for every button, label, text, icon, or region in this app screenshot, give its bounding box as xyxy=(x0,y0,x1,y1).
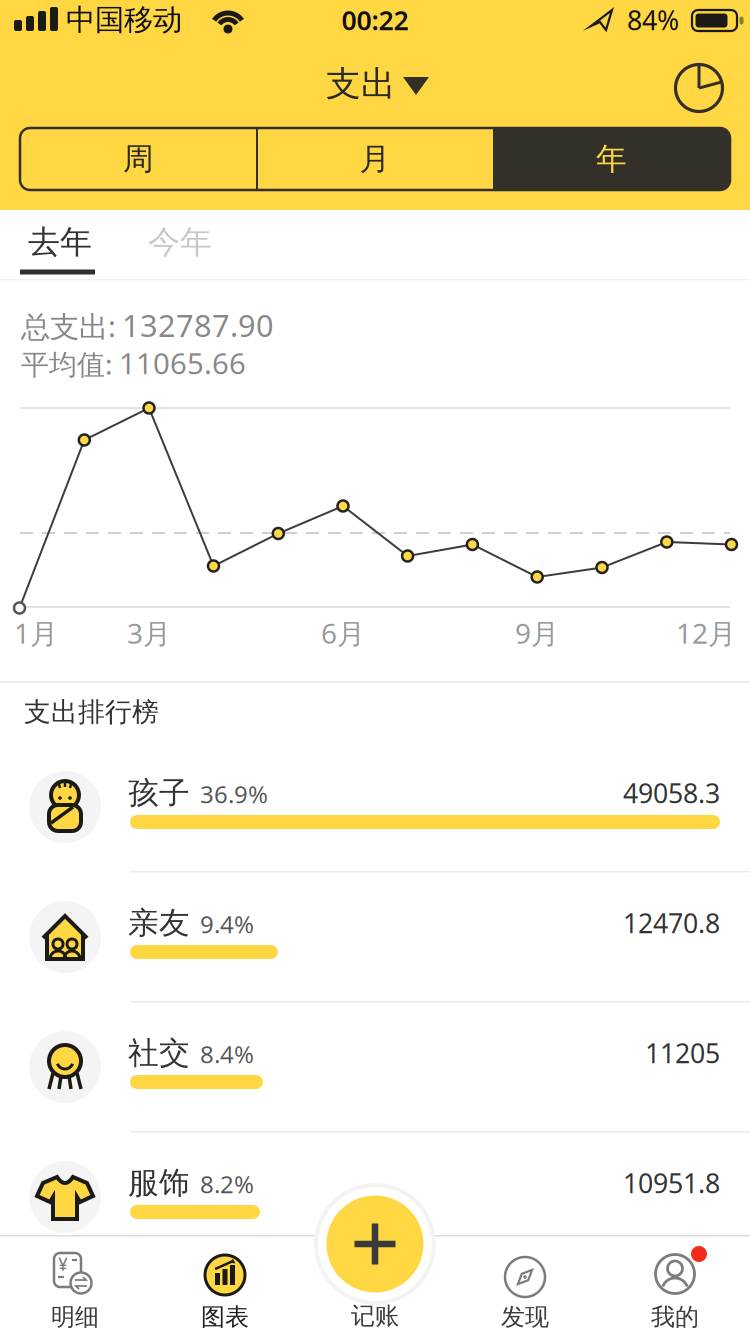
staticText: 去年 xyxy=(28,222,92,262)
button[interactable]: 去年 xyxy=(10,207,110,277)
staticText: 服饰 xyxy=(128,1164,190,1202)
staticText: 11205 xyxy=(645,1035,720,1071)
staticText: 12月 xyxy=(676,614,736,652)
staticText: ¥ xyxy=(58,1252,68,1275)
staticText: 36.9% xyxy=(200,778,268,810)
button[interactable]: 年 xyxy=(493,128,730,190)
staticText: 10951.8 xyxy=(623,1165,720,1201)
button[interactable]: 发现 xyxy=(480,1237,570,1333)
staticText: 3月 xyxy=(127,614,171,652)
staticText: 12470.8 xyxy=(623,905,720,941)
button[interactable]: 支出 xyxy=(300,46,470,126)
staticText: 9月 xyxy=(515,614,559,652)
staticText: 我的 xyxy=(651,1302,699,1332)
button[interactable]: 月 xyxy=(257,128,493,190)
button[interactable]: 我的 xyxy=(630,1237,720,1333)
staticText: 支出 xyxy=(326,63,396,105)
button[interactable]: 亲友 xyxy=(0,872,750,1002)
staticText: 支出排行榜 xyxy=(24,696,159,728)
staticText: 孩子 xyxy=(128,774,190,812)
staticText: 1月 xyxy=(14,614,58,652)
staticText: 平均值: xyxy=(21,345,113,382)
button[interactable]: 社交 xyxy=(0,1002,750,1132)
staticText: 社交 xyxy=(128,1034,190,1072)
button[interactable]: 今年 xyxy=(130,207,230,277)
staticText: 亲友 xyxy=(128,904,190,942)
staticText: 图表 xyxy=(201,1302,249,1332)
staticText: 周 xyxy=(123,140,154,178)
staticText: 明细 xyxy=(51,1302,99,1332)
button[interactable]: 图表 xyxy=(180,1237,270,1333)
button[interactable]: 周 xyxy=(20,128,257,190)
staticText: 8.2% xyxy=(200,1168,254,1200)
staticText: 132787.90 xyxy=(122,305,274,345)
button[interactable]: 服饰 xyxy=(0,1132,750,1262)
button[interactable]: 孩子 xyxy=(0,742,750,872)
staticText: 发现 xyxy=(501,1302,549,1332)
staticText: 月 xyxy=(359,140,390,178)
button[interactable]: ¥ xyxy=(30,1237,120,1333)
staticText: 9.4% xyxy=(200,908,254,940)
staticText: 今年 xyxy=(148,222,212,262)
staticText: 年 xyxy=(596,140,627,178)
staticText: 00:22 xyxy=(341,2,408,38)
staticText: 6月 xyxy=(321,614,365,652)
staticText: 11065.66 xyxy=(119,343,246,382)
button[interactable]: 记账 xyxy=(310,1179,440,1327)
staticText: 49058.3 xyxy=(623,775,720,811)
staticText: 记账 xyxy=(351,1301,399,1331)
staticText: 总支出: xyxy=(21,306,116,345)
staticText: 8.4% xyxy=(200,1038,254,1070)
staticText: 中国移动 xyxy=(66,2,182,38)
button[interactable]: 饼图统计 xyxy=(669,58,729,118)
staticText: 84% xyxy=(627,2,679,38)
